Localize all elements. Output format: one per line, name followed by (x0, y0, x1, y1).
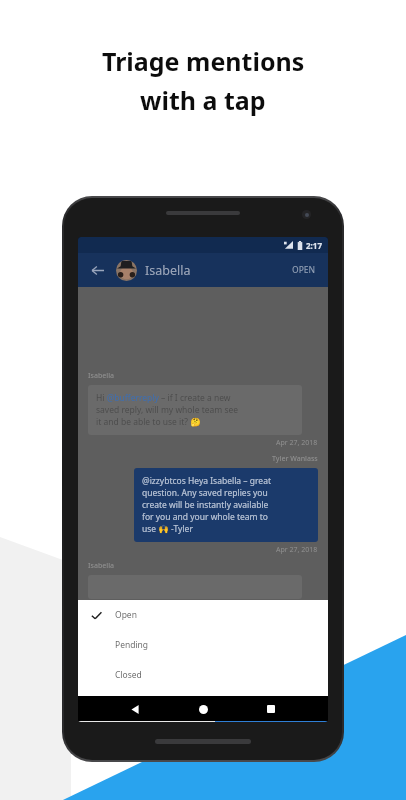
button[interactable]: Open (78, 600, 328, 630)
button[interactable]: OPEN (289, 261, 319, 279)
staticText: use 🙌 -Tyler (142, 523, 193, 535)
button[interactable]: Closed (78, 660, 328, 690)
staticText: Closed (115, 669, 142, 681)
button[interactable]: Back (124, 698, 146, 720)
staticText: with a tap (140, 83, 266, 117)
staticText: question. Any saved replies you (142, 487, 268, 499)
staticText: Isabella (145, 262, 191, 279)
staticText: Apr 27, 2018 (276, 438, 318, 448)
staticText: Hi @bufferreply – if I create a new (96, 392, 231, 404)
staticText: Tyler Wanlass (272, 454, 318, 464)
button[interactable]: Pending (78, 630, 328, 660)
staticText: 2:17 (306, 240, 322, 251)
staticText: Apr 27, 2018 (276, 545, 318, 555)
staticText: @izzybtcos Heya Isabella – great (142, 475, 271, 487)
staticText: OPEN (292, 264, 316, 276)
staticText: Isabella (88, 561, 115, 571)
button[interactable]: Recents (260, 698, 282, 720)
button[interactable]: Hi @bufferreply – if I create a new (88, 385, 302, 435)
staticText: Pending (115, 639, 149, 651)
staticText: Triage mentions (102, 44, 305, 78)
staticText: for you and your whole team to (142, 511, 268, 523)
staticText: Isabella (88, 371, 115, 381)
button[interactable]: @izzybtcos Heya Isabella – great (134, 468, 318, 542)
staticText: create will be instantly available (142, 499, 269, 511)
button[interactable]: Home (192, 698, 214, 720)
button[interactable]: Back (87, 260, 107, 280)
staticText: Open (115, 609, 137, 621)
staticText: it and be able to use it? 🤔 (96, 416, 201, 428)
staticText: saved reply, will my whole team see (96, 404, 239, 416)
